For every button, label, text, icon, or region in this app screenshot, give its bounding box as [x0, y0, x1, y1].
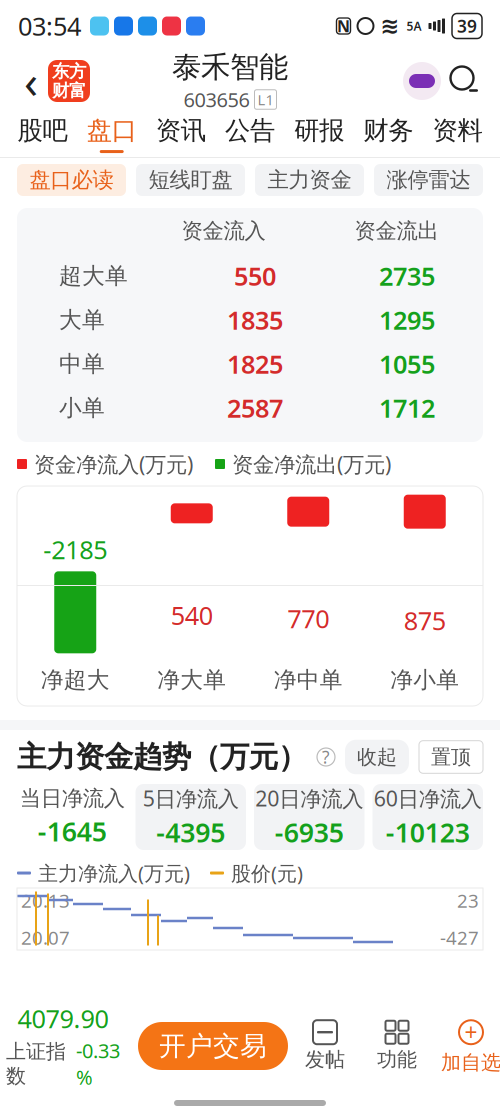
button[interactable]: 资讯 [146, 110, 215, 158]
staticText: 东方 [52, 61, 86, 82]
staticText: 加自选 [441, 1050, 500, 1075]
staticText: 资讯 [156, 115, 206, 146]
staticText: 置顶 [431, 745, 471, 769]
staticText: 540 [171, 598, 213, 632]
staticText: 超大单 [59, 262, 128, 290]
staticText: 550 [234, 259, 276, 293]
staticText: 1835 [227, 303, 283, 337]
staticText: 03:54 [18, 9, 81, 43]
staticText: -1645 [38, 813, 107, 849]
staticText: 603656 [183, 86, 249, 113]
staticText: 盘口必读 [29, 167, 113, 193]
staticText: 主力净流入(万元) [38, 860, 190, 886]
button[interactable]: Back [14, 59, 48, 103]
staticText: ? [322, 745, 330, 768]
staticText: L1 [257, 90, 273, 109]
staticText: 上证指数 [6, 1039, 66, 1088]
staticText: 盘口 [87, 115, 137, 146]
button[interactable]: 60日净流入 [372, 784, 483, 850]
button[interactable]: 置顶 [419, 741, 483, 773]
staticText: -427 [440, 925, 479, 950]
button[interactable]: 4079.90 [0, 1002, 128, 1090]
staticText: 资金净流出(万元) [232, 450, 391, 478]
staticText: 股价(元) [231, 860, 303, 886]
staticText: 短线盯盘 [148, 167, 232, 193]
staticText: 资金流出 [354, 218, 438, 244]
button[interactable]: 功能 [368, 1020, 426, 1072]
button[interactable]: 东方财富 [48, 60, 90, 102]
staticText: 2587 [227, 391, 283, 425]
staticText: 主力资金 [267, 167, 351, 193]
staticText: 20.13 [21, 888, 70, 913]
staticText: N [337, 15, 350, 37]
staticText: 资金净流入(万元) [34, 450, 193, 478]
staticText: 770 [287, 602, 329, 635]
button[interactable]: 主力资金 [255, 164, 364, 196]
staticText: 发帖 [305, 1047, 345, 1072]
staticText: 净小单 [390, 666, 459, 694]
button[interactable]: 股吧 [8, 110, 77, 158]
button[interactable]: 盘口必读 [17, 164, 126, 196]
staticText: 20日净流入 [255, 784, 363, 812]
button[interactable]: 公告 [215, 110, 284, 158]
staticText: 39 [457, 14, 477, 37]
staticText: -2185 [43, 533, 107, 566]
staticText: 1712 [379, 391, 435, 425]
staticText: + [464, 1017, 477, 1047]
staticText: 资金流入 [181, 218, 265, 244]
staticText: 收起 [357, 745, 397, 769]
staticText: 开户交易 [159, 1030, 267, 1062]
staticText: 23 [457, 888, 479, 913]
button[interactable]: 5日净流入 [135, 784, 246, 850]
staticText: 泰禾智能 [172, 49, 288, 85]
staticText: -0.33% [76, 1037, 120, 1090]
button[interactable]: 资料 [423, 110, 492, 158]
staticText: 1825 [227, 347, 283, 381]
staticText: 小单 [59, 394, 105, 422]
staticText: 1055 [379, 347, 435, 381]
staticText: 5日净流入 [143, 784, 239, 812]
button[interactable]: 盘口 [77, 110, 146, 158]
staticText: 主力资金趋势（万元） [17, 739, 307, 775]
staticText: 净超大 [41, 666, 110, 694]
staticText: 功能 [377, 1047, 417, 1072]
staticText: 净中单 [274, 666, 343, 694]
button[interactable]: 收起 [345, 740, 409, 774]
staticText: -10123 [386, 814, 470, 850]
staticText: 股吧 [18, 115, 68, 146]
staticText: 公告 [225, 115, 275, 146]
button[interactable]: 说明 [317, 748, 335, 766]
staticText: 财务 [363, 115, 413, 146]
staticText: ‹ [24, 51, 38, 111]
button[interactable]: 财务 [354, 110, 423, 158]
staticText: 中单 [59, 350, 105, 378]
button[interactable]: Search [444, 60, 486, 102]
staticText: 净大单 [157, 666, 226, 694]
staticText: 60日净流入 [374, 784, 482, 812]
staticText: 4079.90 [17, 1002, 108, 1035]
staticText: 涨停雷达 [386, 167, 470, 193]
staticText: 20.07 [21, 925, 70, 950]
button[interactable]: 短线盯盘 [136, 164, 245, 196]
button[interactable]: AI 助手 [400, 59, 444, 103]
staticText: -6935 [275, 814, 344, 850]
staticText: 875 [404, 604, 446, 637]
button[interactable]: 20日净流入 [254, 784, 364, 850]
staticText: 大单 [59, 306, 105, 334]
button[interactable]: 开户交易 [138, 1022, 288, 1070]
button[interactable]: 涨停雷达 [374, 164, 483, 196]
staticText: ≋ [380, 13, 399, 39]
button[interactable]: 发帖 [296, 1020, 354, 1072]
button[interactable]: + [440, 1017, 500, 1075]
button[interactable]: 研报 [285, 110, 354, 158]
staticText: 5A [406, 18, 421, 34]
staticText: 当日净流入 [20, 785, 125, 811]
staticText: -4395 [156, 814, 225, 850]
button[interactable]: 当日净流入 [17, 784, 127, 850]
staticText: 研报 [294, 115, 344, 146]
staticText: 资料 [432, 115, 482, 146]
staticText: 2735 [379, 259, 435, 293]
staticText: 财富 [52, 80, 86, 101]
staticText: 1295 [379, 303, 435, 337]
